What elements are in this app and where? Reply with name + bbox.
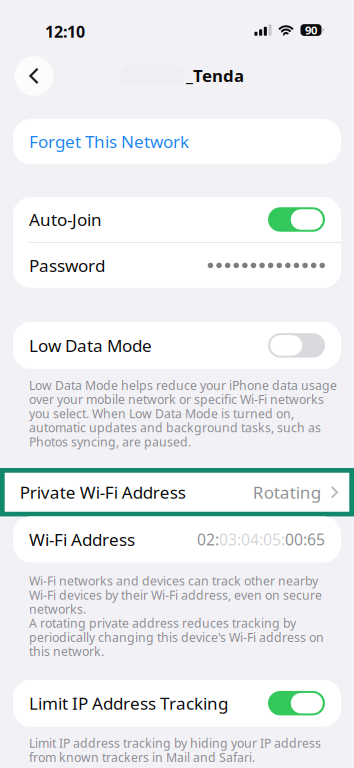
button[interactable]: Low Data Mode bbox=[268, 333, 325, 358]
staticText: this network. bbox=[29, 643, 104, 660]
staticText: Low Data Mode helps reduce your iPhone d… bbox=[29, 377, 337, 394]
staticText: periodically changing this device's Wi-F… bbox=[29, 629, 324, 646]
staticText: Forget This Network bbox=[29, 130, 189, 153]
staticText: 12:10 bbox=[45, 21, 85, 42]
staticText: Wi-Fi Address bbox=[29, 528, 135, 551]
staticText: 02: bbox=[197, 529, 219, 550]
staticText: Wi-Fi devices by their Wi-Fi address, ev… bbox=[29, 586, 322, 603]
button[interactable]: Back bbox=[12, 54, 56, 98]
staticText: networks. bbox=[29, 601, 86, 617]
staticText: Private Wi-Fi Address bbox=[20, 481, 186, 504]
staticText: Limit IP address tracking by hiding your… bbox=[29, 735, 321, 751]
button[interactable]: Private Wi-Fi Address bbox=[0, 468, 354, 516]
staticText: Photos syncing, are paused. bbox=[29, 433, 191, 450]
staticText: 03:04:05: bbox=[219, 529, 285, 550]
staticText: 90 bbox=[305, 22, 317, 38]
staticText: Password bbox=[29, 254, 105, 277]
staticText: A rotating private address reduces track… bbox=[29, 615, 296, 631]
staticText: _Tenda bbox=[186, 64, 244, 87]
staticText: Wi-Fi networks and devices can track oth… bbox=[29, 572, 318, 589]
staticText: Rotating bbox=[253, 481, 321, 504]
staticText: Limit IP Address Tracking bbox=[29, 692, 228, 715]
staticText: Auto-Join bbox=[29, 208, 102, 231]
staticText: Low Data Mode bbox=[29, 334, 152, 357]
staticText: automatic updates and background tasks, … bbox=[29, 419, 321, 436]
staticText: 00:65 bbox=[285, 529, 325, 550]
button[interactable]: Forget This Network bbox=[13, 119, 341, 164]
staticText: from known trackers in Mail and Safari. bbox=[29, 749, 255, 765]
button[interactable]: Limit IP Address Tracking bbox=[268, 691, 325, 715]
staticText: you select. When Low Data Mode is turned… bbox=[29, 405, 294, 422]
staticText: over your mobile network or specific Wi-… bbox=[29, 391, 324, 408]
button[interactable]: Auto-Join bbox=[268, 207, 325, 232]
